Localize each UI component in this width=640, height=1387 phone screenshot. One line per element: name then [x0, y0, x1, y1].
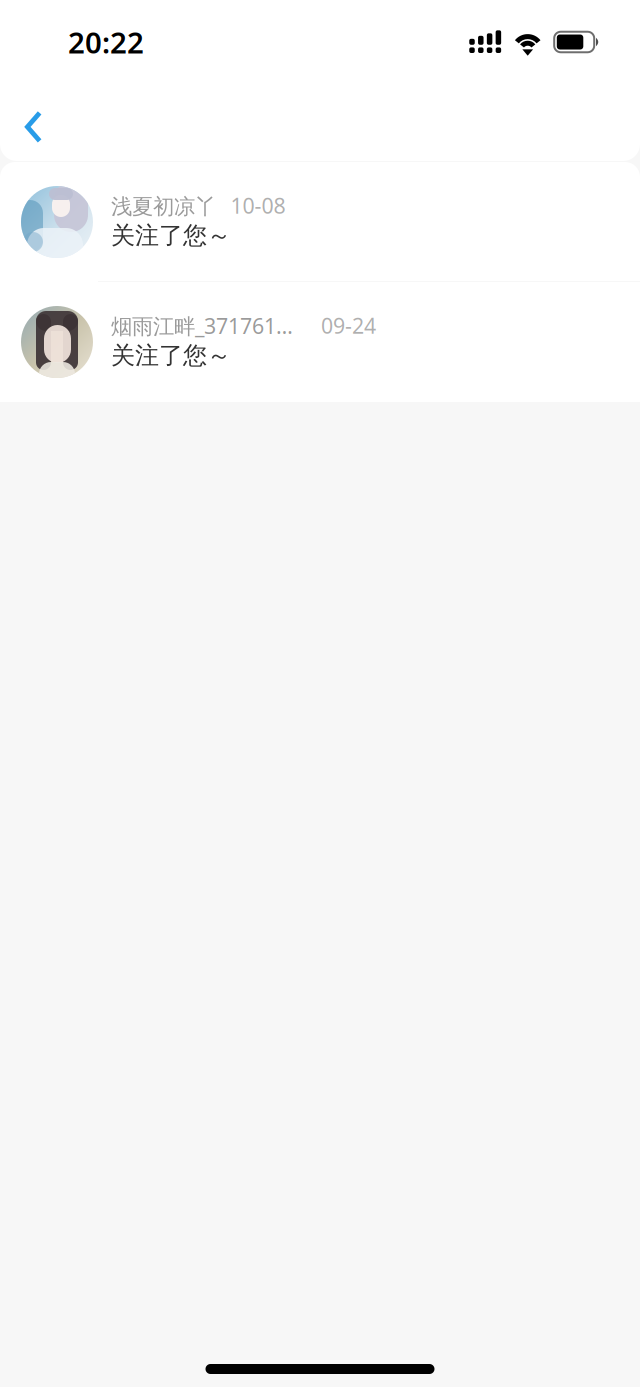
staticText: 10-08	[230, 191, 285, 220]
staticText: 浅夏初凉丫	[111, 193, 216, 220]
staticText: 20:22	[68, 22, 144, 61]
button[interactable]: Back	[0, 84, 68, 161]
button[interactable]: 浅夏初凉丫	[0, 162, 640, 282]
staticText: 关注了您～	[111, 221, 231, 250]
staticText: 09-24	[321, 311, 376, 339]
staticText: 烟雨江畔_371761…	[111, 311, 293, 340]
button[interactable]: 烟雨江畔_371761…	[0, 282, 640, 402]
staticText: 关注了您～	[111, 341, 231, 370]
